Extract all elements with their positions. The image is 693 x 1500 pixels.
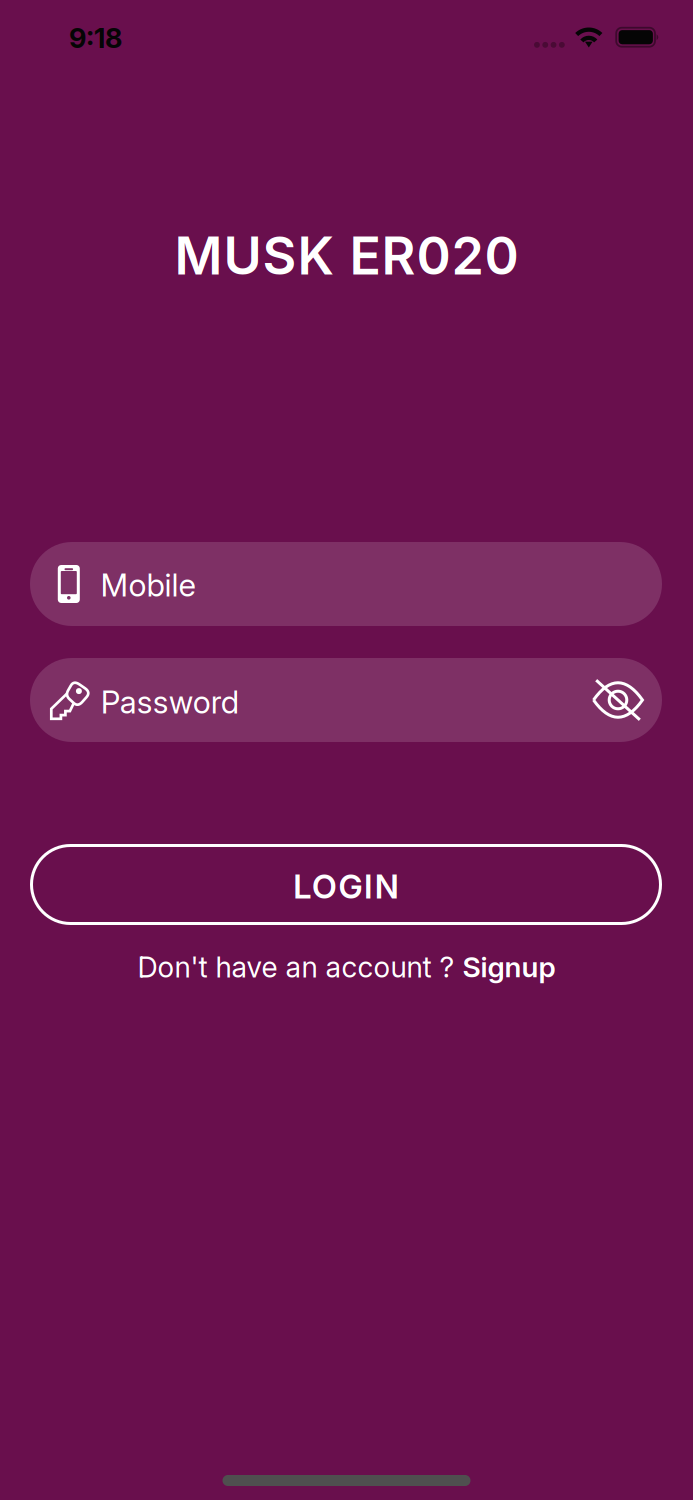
staticText: Signup [462, 950, 555, 984]
staticText: Password [101, 683, 239, 721]
button[interactable]: Show password [579, 658, 657, 742]
button[interactable]: LOGIN [30, 844, 662, 925]
staticText: Mobile [101, 566, 196, 604]
staticText: 9:18 [69, 21, 122, 55]
button[interactable]: Mobile [30, 542, 662, 626]
staticText: Don't have an account ? [137, 950, 462, 984]
staticText: LOGIN [293, 867, 399, 906]
button[interactable]: Don't have an account ? [0, 948, 693, 986]
staticText: MUSK ER020 [174, 224, 518, 287]
